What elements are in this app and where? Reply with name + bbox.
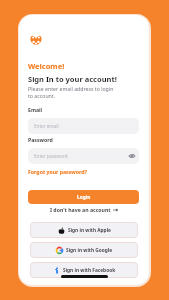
button[interactable]: Enter password	[28, 148, 139, 164]
staticText: Enter email	[34, 123, 59, 129]
staticText: Sign in with Facebook	[63, 267, 116, 274]
staticText: Sign In to your account!	[28, 74, 117, 84]
staticText: Password	[28, 136, 53, 143]
button[interactable]: Forgot your password?	[28, 168, 87, 175]
staticText: Enter password	[34, 153, 68, 159]
button[interactable]: Login	[28, 190, 139, 204]
staticText: Email	[28, 106, 43, 113]
staticText: Welcome!	[28, 61, 65, 71]
staticText: Please enter email address to login to a…	[28, 85, 114, 100]
button[interactable]: Sign in with Google	[30, 242, 138, 258]
button[interactable]: I don't have an account	[19, 206, 149, 213]
staticText: Sign in with Apple	[68, 227, 111, 234]
staticText: I don't have an account	[50, 206, 111, 213]
button[interactable]: Enter email	[28, 118, 139, 134]
button[interactable]: Show password	[129, 153, 135, 159]
button[interactable]: Sign in with Apple	[30, 222, 138, 238]
button[interactable]: Sign in with Facebook	[30, 262, 138, 278]
staticText: Login	[77, 194, 91, 201]
staticText: Sign in with Google	[66, 247, 113, 254]
staticText: Forgot your password?	[28, 168, 87, 175]
